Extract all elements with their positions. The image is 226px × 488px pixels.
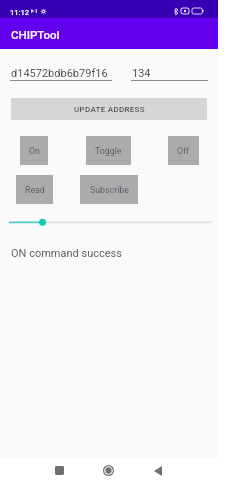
staticText: d14572bdb6b79f16 bbox=[11, 67, 108, 80]
staticText: On bbox=[29, 146, 40, 156]
button[interactable]: On bbox=[20, 136, 48, 165]
staticText: CHIPTool bbox=[11, 28, 60, 41]
button[interactable]: Home bbox=[89, 458, 127, 488]
staticText: UPDATE ADDRESS bbox=[74, 105, 145, 114]
staticText: Off bbox=[177, 146, 190, 156]
button[interactable]: Subscribe bbox=[80, 175, 138, 204]
staticText: ON command success bbox=[11, 247, 122, 260]
staticText: 11:12 bbox=[10, 8, 30, 17]
button[interactable]: Read bbox=[16, 175, 53, 204]
staticText: Subscribe bbox=[90, 185, 129, 195]
staticText: Toggle bbox=[95, 146, 122, 156]
staticText: Read bbox=[25, 185, 45, 195]
button[interactable]: UPDATE ADDRESS bbox=[11, 98, 207, 120]
button[interactable]: Off bbox=[168, 136, 199, 165]
button[interactable]: Toggle bbox=[86, 136, 131, 165]
button[interactable]: Back bbox=[139, 458, 177, 488]
staticText: 134 bbox=[132, 67, 151, 80]
button[interactable]: Recent apps bbox=[40, 458, 78, 488]
button[interactable] bbox=[0, 211, 218, 232]
